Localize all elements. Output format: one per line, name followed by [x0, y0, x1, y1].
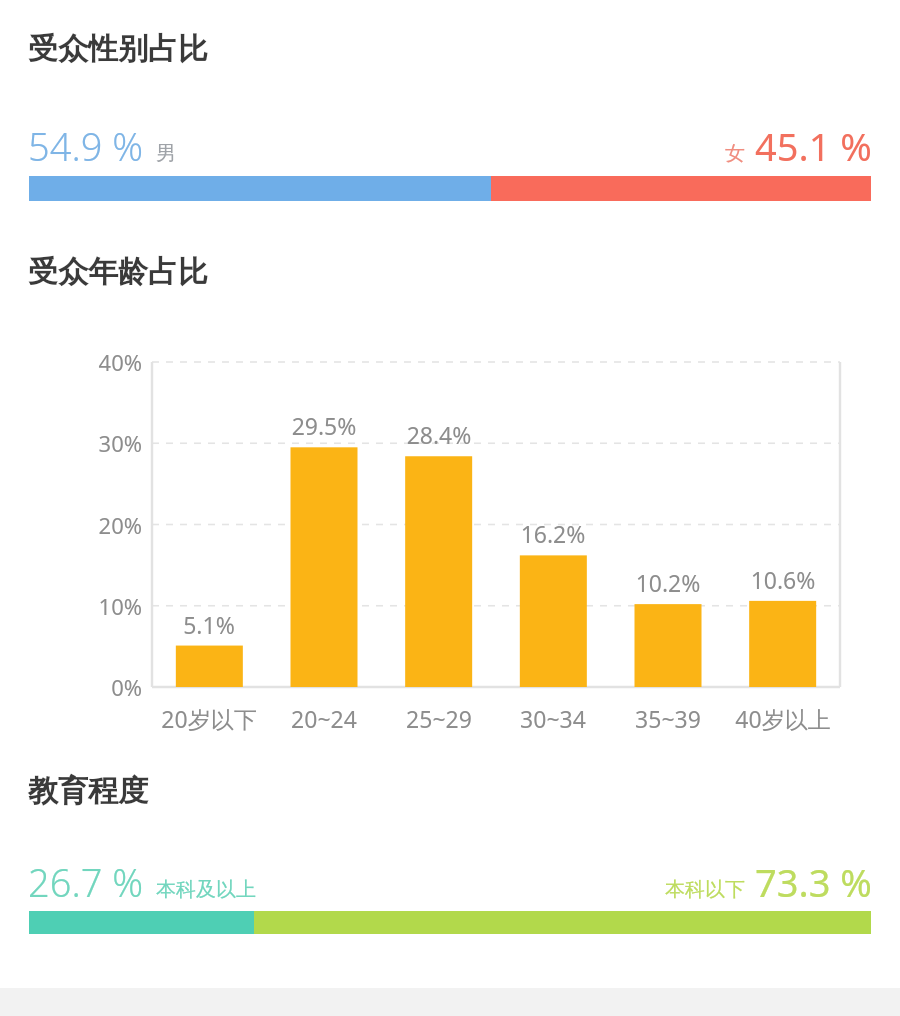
button[interactable]: 20岁以下	[141, 703, 277, 734]
staticText: 受众性别占比	[28, 30, 208, 68]
button[interactable]	[29, 176, 871, 201]
staticText: 10.6%	[718, 564, 848, 595]
staticText: 男	[156, 141, 176, 166]
staticText: 30~34	[485, 703, 621, 734]
staticText: 20%	[84, 510, 142, 540]
staticText: 10.2%	[603, 567, 733, 598]
button[interactable]: 20~24	[256, 703, 392, 734]
staticText: 28.4%	[374, 419, 504, 450]
button[interactable]: 25~29	[371, 703, 507, 734]
staticText: 受众年龄占比	[28, 253, 208, 291]
staticText: 30%	[84, 428, 142, 458]
staticText: 0%	[84, 672, 142, 702]
button[interactable]: 40岁以上	[715, 703, 851, 734]
staticText: 54.9 %	[28, 120, 144, 172]
staticText: 10%	[84, 591, 142, 621]
staticText: 25~29	[371, 703, 507, 734]
staticText: 16.2%	[488, 518, 618, 549]
staticText: 教育程度	[28, 772, 148, 810]
button[interactable]: 35~39	[600, 703, 736, 734]
button[interactable]: 30~34	[485, 703, 621, 734]
staticText: 女	[725, 141, 745, 166]
button[interactable]	[29, 911, 871, 934]
staticText: 本科以下	[665, 877, 745, 902]
staticText: 29.5%	[259, 410, 389, 441]
staticText: 本科及以上	[156, 877, 256, 902]
staticText: 73.3 %	[755, 856, 872, 908]
staticText: 26.7 %	[28, 856, 144, 908]
staticText: 20岁以下	[141, 703, 277, 734]
staticText: 40%	[84, 347, 142, 377]
staticText: 35~39	[600, 703, 736, 734]
staticText: 5.1%	[144, 609, 274, 640]
staticText: 45.1 %	[755, 120, 872, 172]
staticText: 40岁以上	[715, 703, 851, 734]
staticText: 20~24	[256, 703, 392, 734]
